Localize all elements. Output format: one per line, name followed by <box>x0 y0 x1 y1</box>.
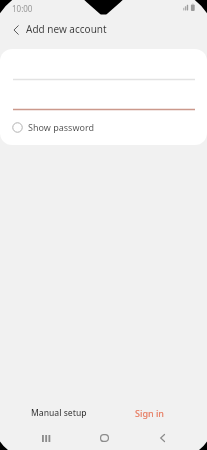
button[interactable]: Home <box>90 427 118 449</box>
button[interactable]: Manual setup <box>11 399 106 426</box>
staticText: Show password <box>28 121 94 133</box>
staticText: Manual setup <box>31 407 87 419</box>
staticText: Sign in <box>135 407 165 419</box>
button[interactable]: Password <box>13 87 195 110</box>
button[interactable]: Email address <box>13 57 195 80</box>
button[interactable]: Navigate up <box>4 16 27 44</box>
staticText: 10:00 <box>12 3 33 14</box>
button[interactable]: Show password <box>12 118 104 136</box>
button[interactable]: Back <box>148 427 176 449</box>
button[interactable]: Sign in <box>105 399 195 426</box>
staticText: Add new account <box>26 22 107 36</box>
button[interactable]: Recent apps <box>32 427 60 449</box>
